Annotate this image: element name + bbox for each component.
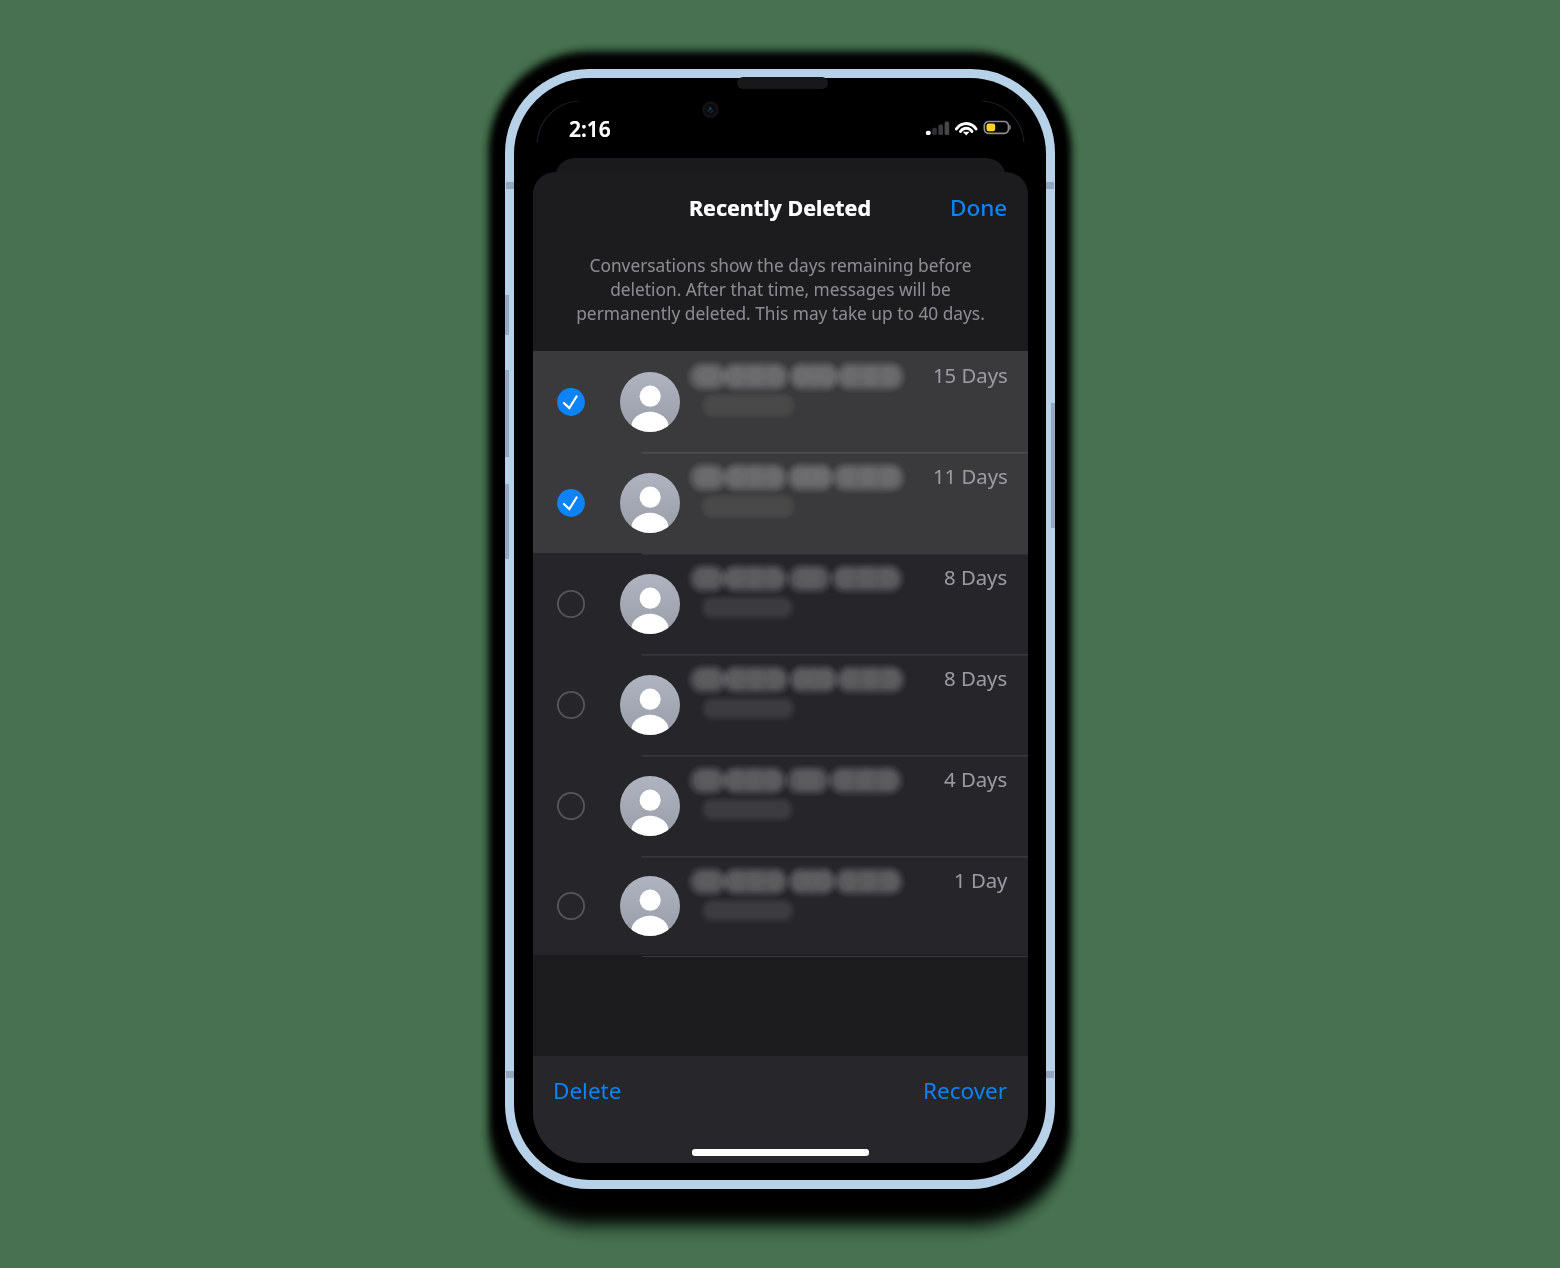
staticText: 11 Days [933, 462, 1008, 490]
button[interactable]: Select conversation [549, 784, 593, 828]
button[interactable]: Select conversation [549, 582, 593, 626]
button[interactable]: Select conversation [533, 856, 1028, 955]
staticText: Delete [553, 1075, 622, 1106]
staticText: 15 Days [933, 361, 1008, 389]
staticText: Done [950, 192, 1008, 223]
button[interactable]: Done [930, 174, 1028, 241]
button[interactable]: Select conversation [549, 884, 593, 928]
button[interactable]: Select conversation [533, 654, 1028, 755]
staticText: 4 Days [944, 765, 1008, 793]
button[interactable]: Recover [903, 1061, 1028, 1120]
staticText: 8 Days [944, 664, 1008, 692]
button[interactable]: Selected conversation [533, 452, 1028, 553]
button[interactable]: Select conversation [549, 683, 593, 727]
staticText: 1 Day [954, 866, 1008, 894]
button[interactable]: Select conversation [533, 755, 1028, 856]
button[interactable]: Delete [533, 1061, 642, 1120]
button[interactable]: Selected conversation [549, 380, 593, 424]
button[interactable]: Selected conversation [533, 351, 1028, 452]
staticText: Conversations show the days remaining be… [533, 254, 1028, 326]
button[interactable]: Selected conversation [549, 481, 593, 525]
staticText: 8 Days [944, 563, 1008, 591]
staticText: Recently Deleted [689, 193, 872, 222]
staticText: 2:16 [569, 115, 611, 144]
staticText: Recover [923, 1075, 1008, 1106]
button[interactable]: Select conversation [533, 553, 1028, 654]
